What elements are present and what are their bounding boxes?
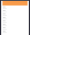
button[interactable] [2, 25, 62, 28]
button[interactable] [2, 10, 62, 13]
button[interactable] [2, 13, 62, 16]
button[interactable] [2, 16, 62, 19]
button[interactable] [2, 7, 62, 10]
button[interactable] [2, 28, 62, 31]
button[interactable] [2, 22, 62, 25]
button[interactable] [2, 19, 62, 22]
button[interactable]: Menu [2, 1, 62, 6]
